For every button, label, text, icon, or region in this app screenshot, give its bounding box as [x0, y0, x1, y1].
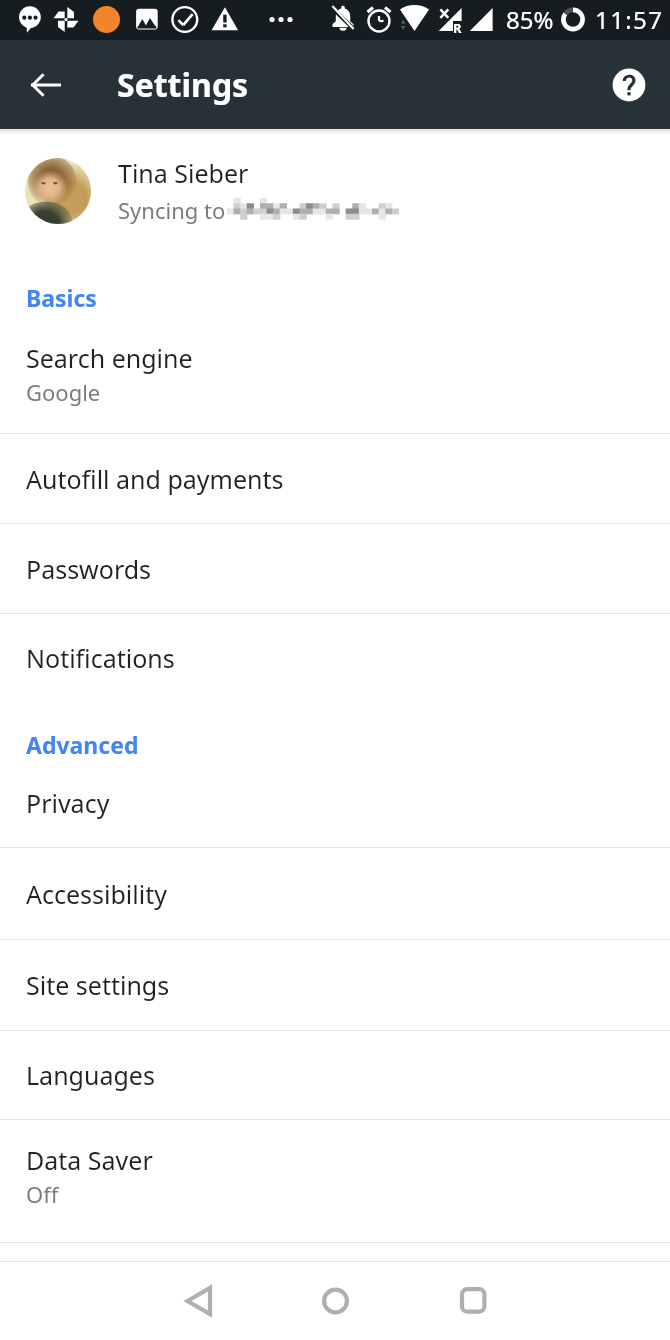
- staticText: Google: [26, 377, 101, 407]
- staticText: Advanced: [26, 729, 139, 758]
- button[interactable]: Search engine: [0, 320, 670, 433]
- staticText: Basics: [26, 282, 97, 313]
- staticText: Tina Sieber: [118, 156, 249, 190]
- button[interactable]: Help and feedback: [604, 60, 654, 110]
- button[interactable]: Passwords: [0, 524, 670, 613]
- staticText: Off: [26, 1179, 59, 1209]
- staticText: 11:57: [595, 3, 664, 36]
- staticText: 85%: [506, 3, 554, 36]
- staticText: Notifications: [26, 641, 175, 675]
- button[interactable]: Accessibility: [0, 848, 670, 939]
- button[interactable]: Data Saver: [0, 1120, 670, 1242]
- staticText: Passwords: [26, 552, 152, 586]
- button[interactable]: Notifications: [0, 614, 670, 702]
- button[interactable]: Back: [168, 1271, 228, 1331]
- staticText: Autofill and payments: [26, 462, 284, 496]
- button[interactable]: Recent apps: [443, 1271, 503, 1331]
- staticText: Accessibility: [26, 877, 167, 911]
- button[interactable]: Languages: [0, 1031, 670, 1119]
- button[interactable]: Autofill and payments: [0, 434, 670, 523]
- staticText: Search engine: [26, 341, 193, 375]
- staticText: Privacy: [26, 786, 110, 820]
- staticText: R: [453, 19, 462, 37]
- button[interactable]: Tina Sieber: [0, 129, 670, 245]
- staticText: Settings: [117, 63, 249, 107]
- staticText: Data Saver: [26, 1143, 153, 1177]
- button[interactable]: Privacy: [0, 758, 670, 847]
- button[interactable]: Navigate up: [20, 59, 72, 111]
- staticText: Syncing to: [118, 195, 226, 225]
- button[interactable]: Home: [305, 1271, 365, 1331]
- staticText: Site settings: [26, 968, 170, 1002]
- button[interactable]: Site settings: [0, 940, 670, 1030]
- staticText: Languages: [26, 1058, 155, 1092]
